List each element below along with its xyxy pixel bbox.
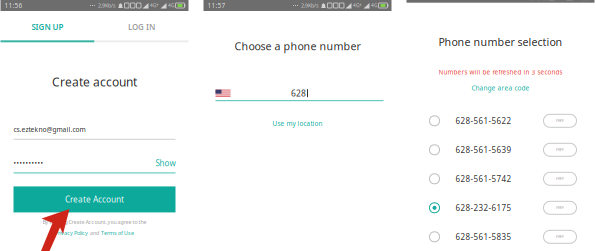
staticText: FREE: [556, 205, 564, 210]
button[interactable]: LOG IN: [94, 11, 188, 42]
staticText: 2,9Kb/s: [301, 2, 319, 9]
staticText: Create Account: [65, 194, 124, 205]
button[interactable]: 628-561-5639: [406, 135, 594, 164]
staticText: LOG IN: [128, 22, 155, 32]
staticText: By clicking Create Account, you agree to…: [42, 218, 146, 225]
button[interactable]: Show: [155, 158, 175, 168]
staticText: Numbers will be refreshed in 3 seconds: [438, 68, 562, 76]
button[interactable]: Terms of Use: [101, 229, 134, 237]
staticText: FREE: [556, 147, 564, 152]
staticText: FREE: [556, 234, 564, 239]
staticText: Use my location: [272, 119, 322, 128]
staticText: 4G: [371, 2, 377, 9]
staticText: 628-561-5742: [455, 173, 511, 184]
button[interactable]: Privacy Policy: [55, 229, 88, 237]
staticText: 11:57: [207, 1, 225, 10]
staticText: cs.eztekno@gmail.com: [13, 125, 85, 134]
staticText: 628-232-6175: [455, 202, 511, 213]
staticText: and: [90, 229, 99, 237]
staticText: 628-561-5835: [455, 231, 511, 242]
staticText: ••••••••••: [13, 159, 43, 168]
button[interactable]: 628-561-5835: [406, 222, 594, 251]
button[interactable]: 628-232-6175: [406, 193, 594, 222]
staticText: Show: [155, 158, 175, 168]
staticText: SIGN UP: [31, 22, 63, 32]
staticText: 628-561-5622: [455, 115, 511, 126]
button[interactable]: Use my location: [272, 119, 322, 128]
staticText: Choose a phone number: [234, 39, 360, 53]
staticText: 628-561-5639: [455, 144, 511, 155]
button[interactable]: Create Account: [13, 186, 175, 212]
staticText: FREE: [556, 176, 564, 181]
staticText: 11:56: [4, 1, 22, 10]
staticText: 2,9Kb/s: [98, 2, 116, 9]
button[interactable]: SIGN UP: [0, 11, 94, 42]
staticText: 4G: [168, 2, 174, 9]
button[interactable]: 628-561-5622: [406, 106, 594, 135]
staticText: Terms of Use: [101, 229, 134, 237]
button[interactable]: Change area code: [471, 83, 529, 92]
button[interactable]: 628-561-5742: [406, 164, 594, 193]
staticText: 628: [291, 87, 306, 99]
staticText: Phone number selection: [438, 35, 562, 49]
staticText: Create account: [52, 74, 137, 90]
staticText: 4G+: [353, 2, 362, 9]
staticText: Privacy Policy: [55, 229, 88, 237]
staticText: 4G+: [150, 2, 159, 9]
staticText: Change area code: [471, 83, 529, 92]
staticText: FREE: [556, 118, 564, 123]
